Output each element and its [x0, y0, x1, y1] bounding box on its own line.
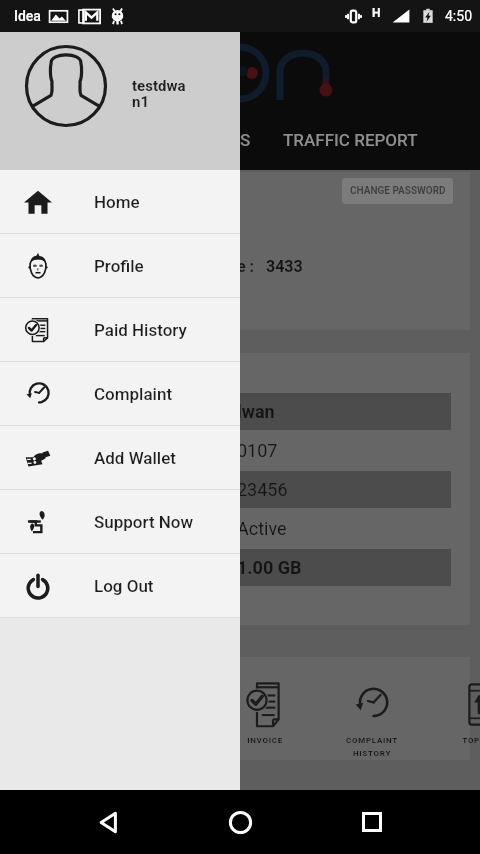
staticText: Home [94, 192, 140, 212]
staticText: e : [237, 257, 255, 276]
staticText: Idea [14, 8, 41, 24]
button[interactable]: TOP-UP [431, 678, 480, 745]
button[interactable]: Add Wallet [0, 426, 240, 489]
staticText: 23456 [237, 479, 288, 500]
staticText: Profile [94, 256, 144, 276]
staticText: Add Wallet [94, 448, 176, 468]
button[interactable]: Home [0, 170, 240, 233]
staticText: S [240, 130, 251, 150]
staticText: 0107 [237, 440, 278, 461]
button[interactable]: Complaint [0, 362, 240, 425]
button[interactable]: Recent apps [348, 798, 396, 846]
staticText: testdwa n1 [132, 77, 186, 111]
staticText: Support Now [94, 512, 194, 532]
staticText: Paid History [94, 320, 187, 340]
staticText: Complaint [94, 384, 173, 404]
staticText: lwan [237, 401, 275, 422]
staticText: TOP-UP [462, 736, 480, 745]
button[interactable]: Log Out [0, 554, 240, 617]
button[interactable]: TRAFFIC REPORT [283, 130, 418, 150]
staticText: 4:50 [445, 8, 472, 24]
button[interactable]: Profile [0, 234, 240, 297]
staticText: 3433 [266, 257, 303, 276]
staticText: INVOICE [247, 736, 283, 745]
button[interactable]: COMPLAINT HISTORY [324, 678, 420, 758]
staticText: H [372, 6, 381, 20]
button[interactable]: INVOICE [217, 678, 313, 745]
button[interactable]: Support Now [0, 490, 240, 553]
button[interactable]: Paid History [0, 298, 240, 361]
button[interactable]: Home [216, 798, 264, 846]
staticText: COMPLAINT HISTORY [346, 736, 398, 758]
staticText: CHANGE PASSWORD [350, 185, 446, 197]
staticText: 1.00 GB [237, 557, 302, 578]
staticText: Log Out [94, 576, 154, 596]
staticText: Active [237, 518, 287, 539]
button[interactable]: Back [84, 798, 132, 846]
